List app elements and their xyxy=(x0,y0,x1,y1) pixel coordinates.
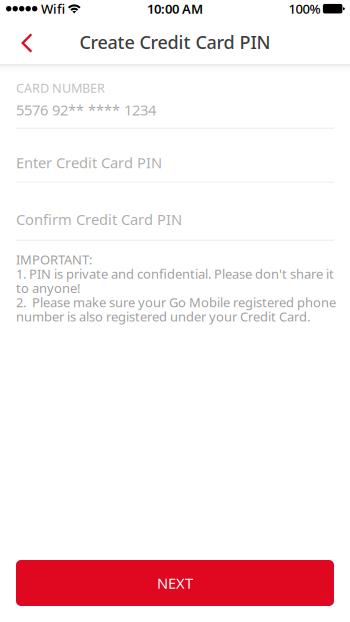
staticText: 10:00 AM xyxy=(147,0,203,18)
staticText: Confirm Credit Card PIN xyxy=(16,209,182,229)
button[interactable]: NEXT xyxy=(16,560,334,606)
staticText: number is also registered under your Cre… xyxy=(16,308,310,325)
staticText: Wifi xyxy=(41,0,65,18)
button[interactable]: Back xyxy=(5,20,49,64)
staticText: 1. PIN is private and confidential. Plea… xyxy=(16,265,334,282)
staticText: to anyone! xyxy=(16,279,80,297)
staticText: Enter Credit Card PIN xyxy=(16,153,162,173)
staticText: Create Credit Card PIN xyxy=(79,30,270,54)
staticText: NEXT xyxy=(157,573,193,593)
staticText: IMPORTANT: xyxy=(16,251,92,268)
staticText: CARD NUMBER xyxy=(16,79,105,97)
staticText: 2. Please make sure your Go Mobile regis… xyxy=(16,293,336,311)
staticText: 5576 92** **** 1234 xyxy=(16,100,156,120)
staticText: 100% xyxy=(288,0,320,18)
